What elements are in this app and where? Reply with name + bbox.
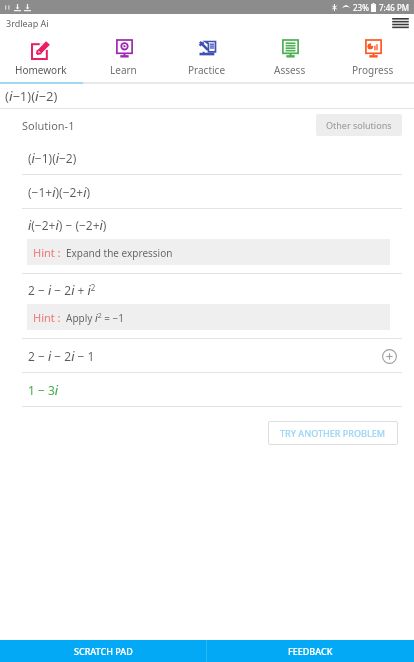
staticText: 23%	[353, 2, 369, 13]
staticText: (i−1)(i−2)	[5, 87, 58, 105]
staticText: i(−2+i) − (−2+i)	[28, 217, 107, 233]
button[interactable]: 1 − 3i	[0, 373, 414, 406]
button[interactable]: 2 − i − 2i + i2	[0, 274, 414, 338]
staticText: Homework	[15, 63, 67, 77]
staticText: 2 − i − 2i − 1	[28, 348, 95, 364]
button[interactable]: (i−1)(i−2)	[0, 141, 414, 174]
staticText: 3rdleap Ai	[6, 17, 49, 29]
button[interactable]: FEEDBACK	[207, 640, 414, 662]
staticText: FEEDBACK	[288, 645, 333, 657]
button[interactable]: Menu	[390, 14, 410, 32]
staticText: 1 − 3i	[28, 382, 59, 398]
button[interactable]: Homework	[0, 32, 82, 82]
staticText: TRY ANOTHER PROBLEM	[280, 427, 386, 439]
button[interactable]: i(−2+i) − (−2+i)	[0, 209, 414, 273]
button[interactable]: SCRATCH PAD	[0, 640, 206, 662]
staticText: Hint :	[33, 245, 61, 260]
staticText: Apply i2 = −1	[66, 311, 125, 325]
button[interactable]: Learn	[82, 32, 165, 82]
button[interactable]: 2 − i − 2i − 1	[0, 339, 414, 372]
staticText: Assess	[274, 63, 306, 77]
button[interactable]: Practice	[165, 32, 248, 82]
staticText: Hint :	[33, 310, 61, 325]
button[interactable]: TRY ANOTHER PROBLEM	[268, 421, 398, 445]
staticText: 7:46 PM	[379, 2, 410, 13]
staticText: Solution-1	[22, 118, 75, 133]
button[interactable]: (−1+i)(−2+i)	[0, 175, 414, 208]
staticText: Progress	[352, 63, 394, 77]
button[interactable]: Add step	[378, 345, 400, 367]
staticText: Learn	[110, 63, 137, 77]
staticText: Expand the expression	[66, 246, 173, 260]
staticText: (i−1)(i−2)	[28, 150, 77, 166]
button[interactable]: Progress	[331, 32, 414, 82]
button[interactable]: Assess	[248, 32, 331, 82]
staticText: (−1+i)(−2+i)	[28, 184, 91, 200]
staticText: Other solutions	[326, 119, 392, 131]
button[interactable]: Other solutions	[316, 114, 402, 136]
staticText: SCRATCH PAD	[74, 645, 133, 657]
staticText: Practice	[188, 63, 226, 77]
staticText: 2 − i − 2i + i2	[28, 282, 96, 298]
